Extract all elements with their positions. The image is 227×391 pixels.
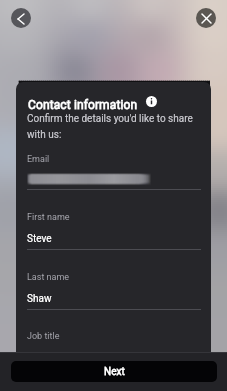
staticText: Email bbox=[27, 154, 50, 165]
staticText: Shaw bbox=[27, 293, 52, 305]
staticText: Confirm the details you'd like to share … bbox=[27, 113, 201, 141]
staticText: Contact information bbox=[28, 98, 138, 112]
staticText: Steve bbox=[27, 233, 52, 245]
button[interactable]: Info bbox=[146, 96, 157, 107]
staticText: Last name bbox=[27, 272, 70, 283]
staticText: First name bbox=[27, 212, 70, 223]
button[interactable]: Close bbox=[196, 8, 216, 28]
staticText: Job title bbox=[27, 331, 60, 342]
staticText: Next bbox=[104, 366, 125, 378]
button[interactable]: Back bbox=[11, 8, 31, 28]
button[interactable]: Next bbox=[11, 361, 217, 382]
